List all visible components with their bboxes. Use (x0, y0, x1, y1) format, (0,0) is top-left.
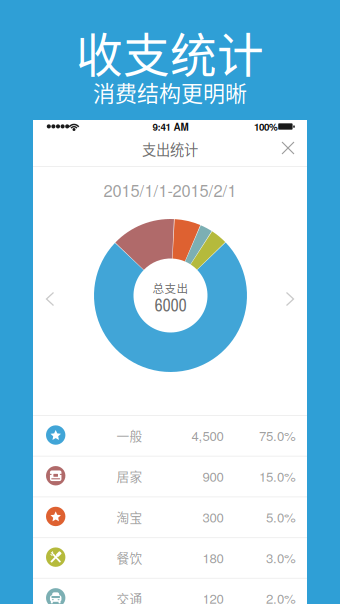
staticText: 300 (202, 507, 223, 526)
staticText: 3.0% (266, 548, 296, 567)
staticText: 居家 (116, 467, 142, 485)
staticText: 消费结构更明晰 (93, 76, 247, 108)
staticText: 总支出 (152, 280, 188, 296)
button[interactable]: Previous period (35, 281, 64, 316)
staticText: 收支统计 (76, 18, 264, 86)
staticText: 15.0% (259, 467, 296, 485)
staticText: 120 (202, 589, 223, 604)
staticText: 900 (202, 467, 223, 485)
button[interactable]: 一般 (33, 415, 307, 456)
staticText: 2015/1/1-2015/2/1 (103, 178, 236, 202)
staticText: 100% (254, 120, 278, 134)
button[interactable]: 居家 (33, 456, 307, 496)
staticText: 支出统计 (142, 139, 198, 159)
staticText: 一般 (116, 426, 142, 444)
staticText: 5.0% (266, 507, 296, 526)
staticText: 2.0% (266, 589, 296, 604)
staticText: 180 (202, 548, 223, 567)
staticText: 9:41 AM (152, 120, 188, 134)
button[interactable]: 餐饮 (33, 537, 307, 578)
button[interactable]: 交通 (33, 578, 307, 604)
staticText: 淘宝 (116, 508, 142, 526)
staticText: 交通 (116, 589, 142, 604)
staticText: 餐饮 (116, 548, 142, 567)
button[interactable]: 淘宝 (33, 496, 307, 537)
staticText: 75.0% (259, 426, 296, 445)
button[interactable]: Close (274, 134, 302, 162)
staticText: 6000 (154, 293, 186, 317)
button[interactable]: Next period (275, 281, 304, 316)
staticText: 4,500 (191, 426, 223, 445)
